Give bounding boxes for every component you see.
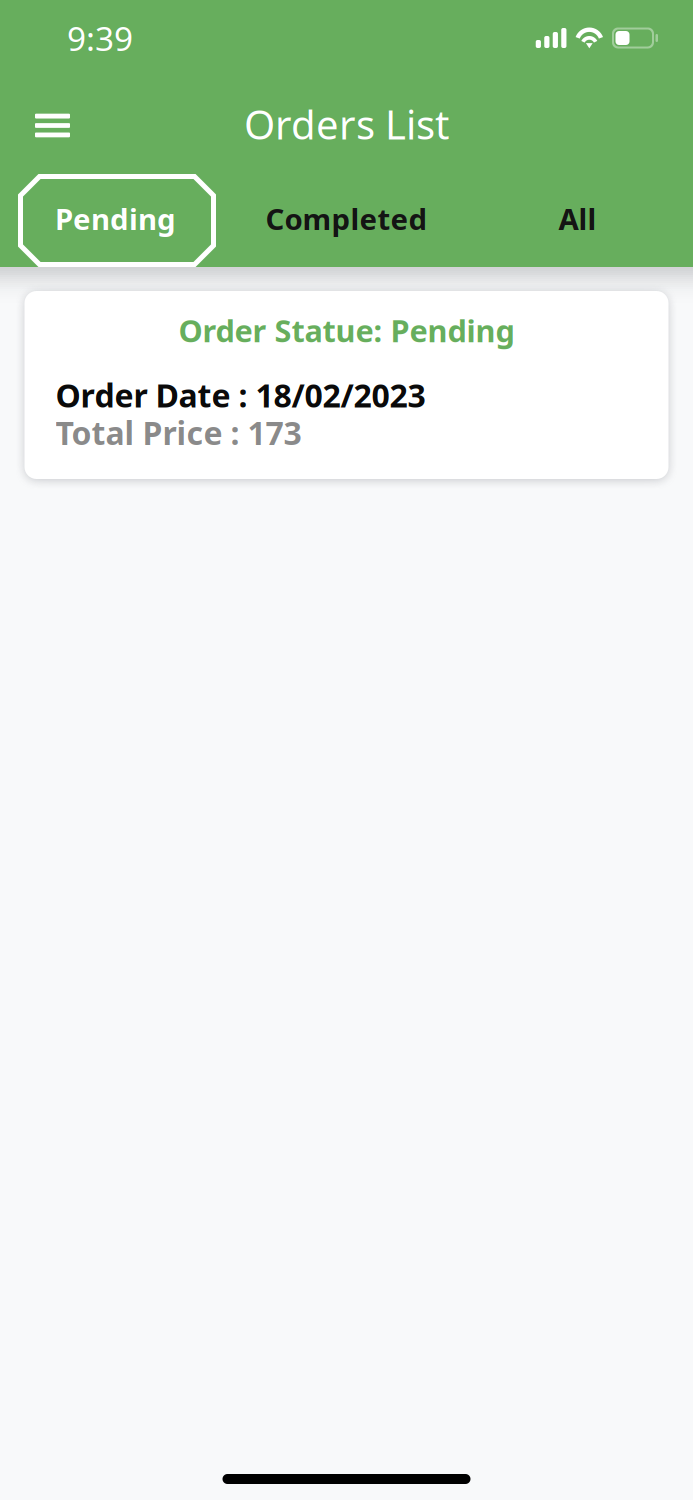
staticText: Orders List [244,97,449,150]
staticText: Pending [55,199,176,238]
button[interactable]: All [462,170,693,266]
button[interactable]: Order Statue: Pending [24,291,668,479]
staticText: 9:39 [67,16,133,60]
button[interactable]: Pending [0,170,231,266]
staticText: Total Price : 173 [55,411,301,454]
button[interactable]: Completed [231,170,462,266]
staticText: Completed [265,199,427,238]
staticText: Order Date : 18/02/2023 [55,374,425,416]
button[interactable]: Menu [0,91,87,156]
staticText: All [558,199,596,238]
staticText: Order Statue: Pending [178,310,514,351]
